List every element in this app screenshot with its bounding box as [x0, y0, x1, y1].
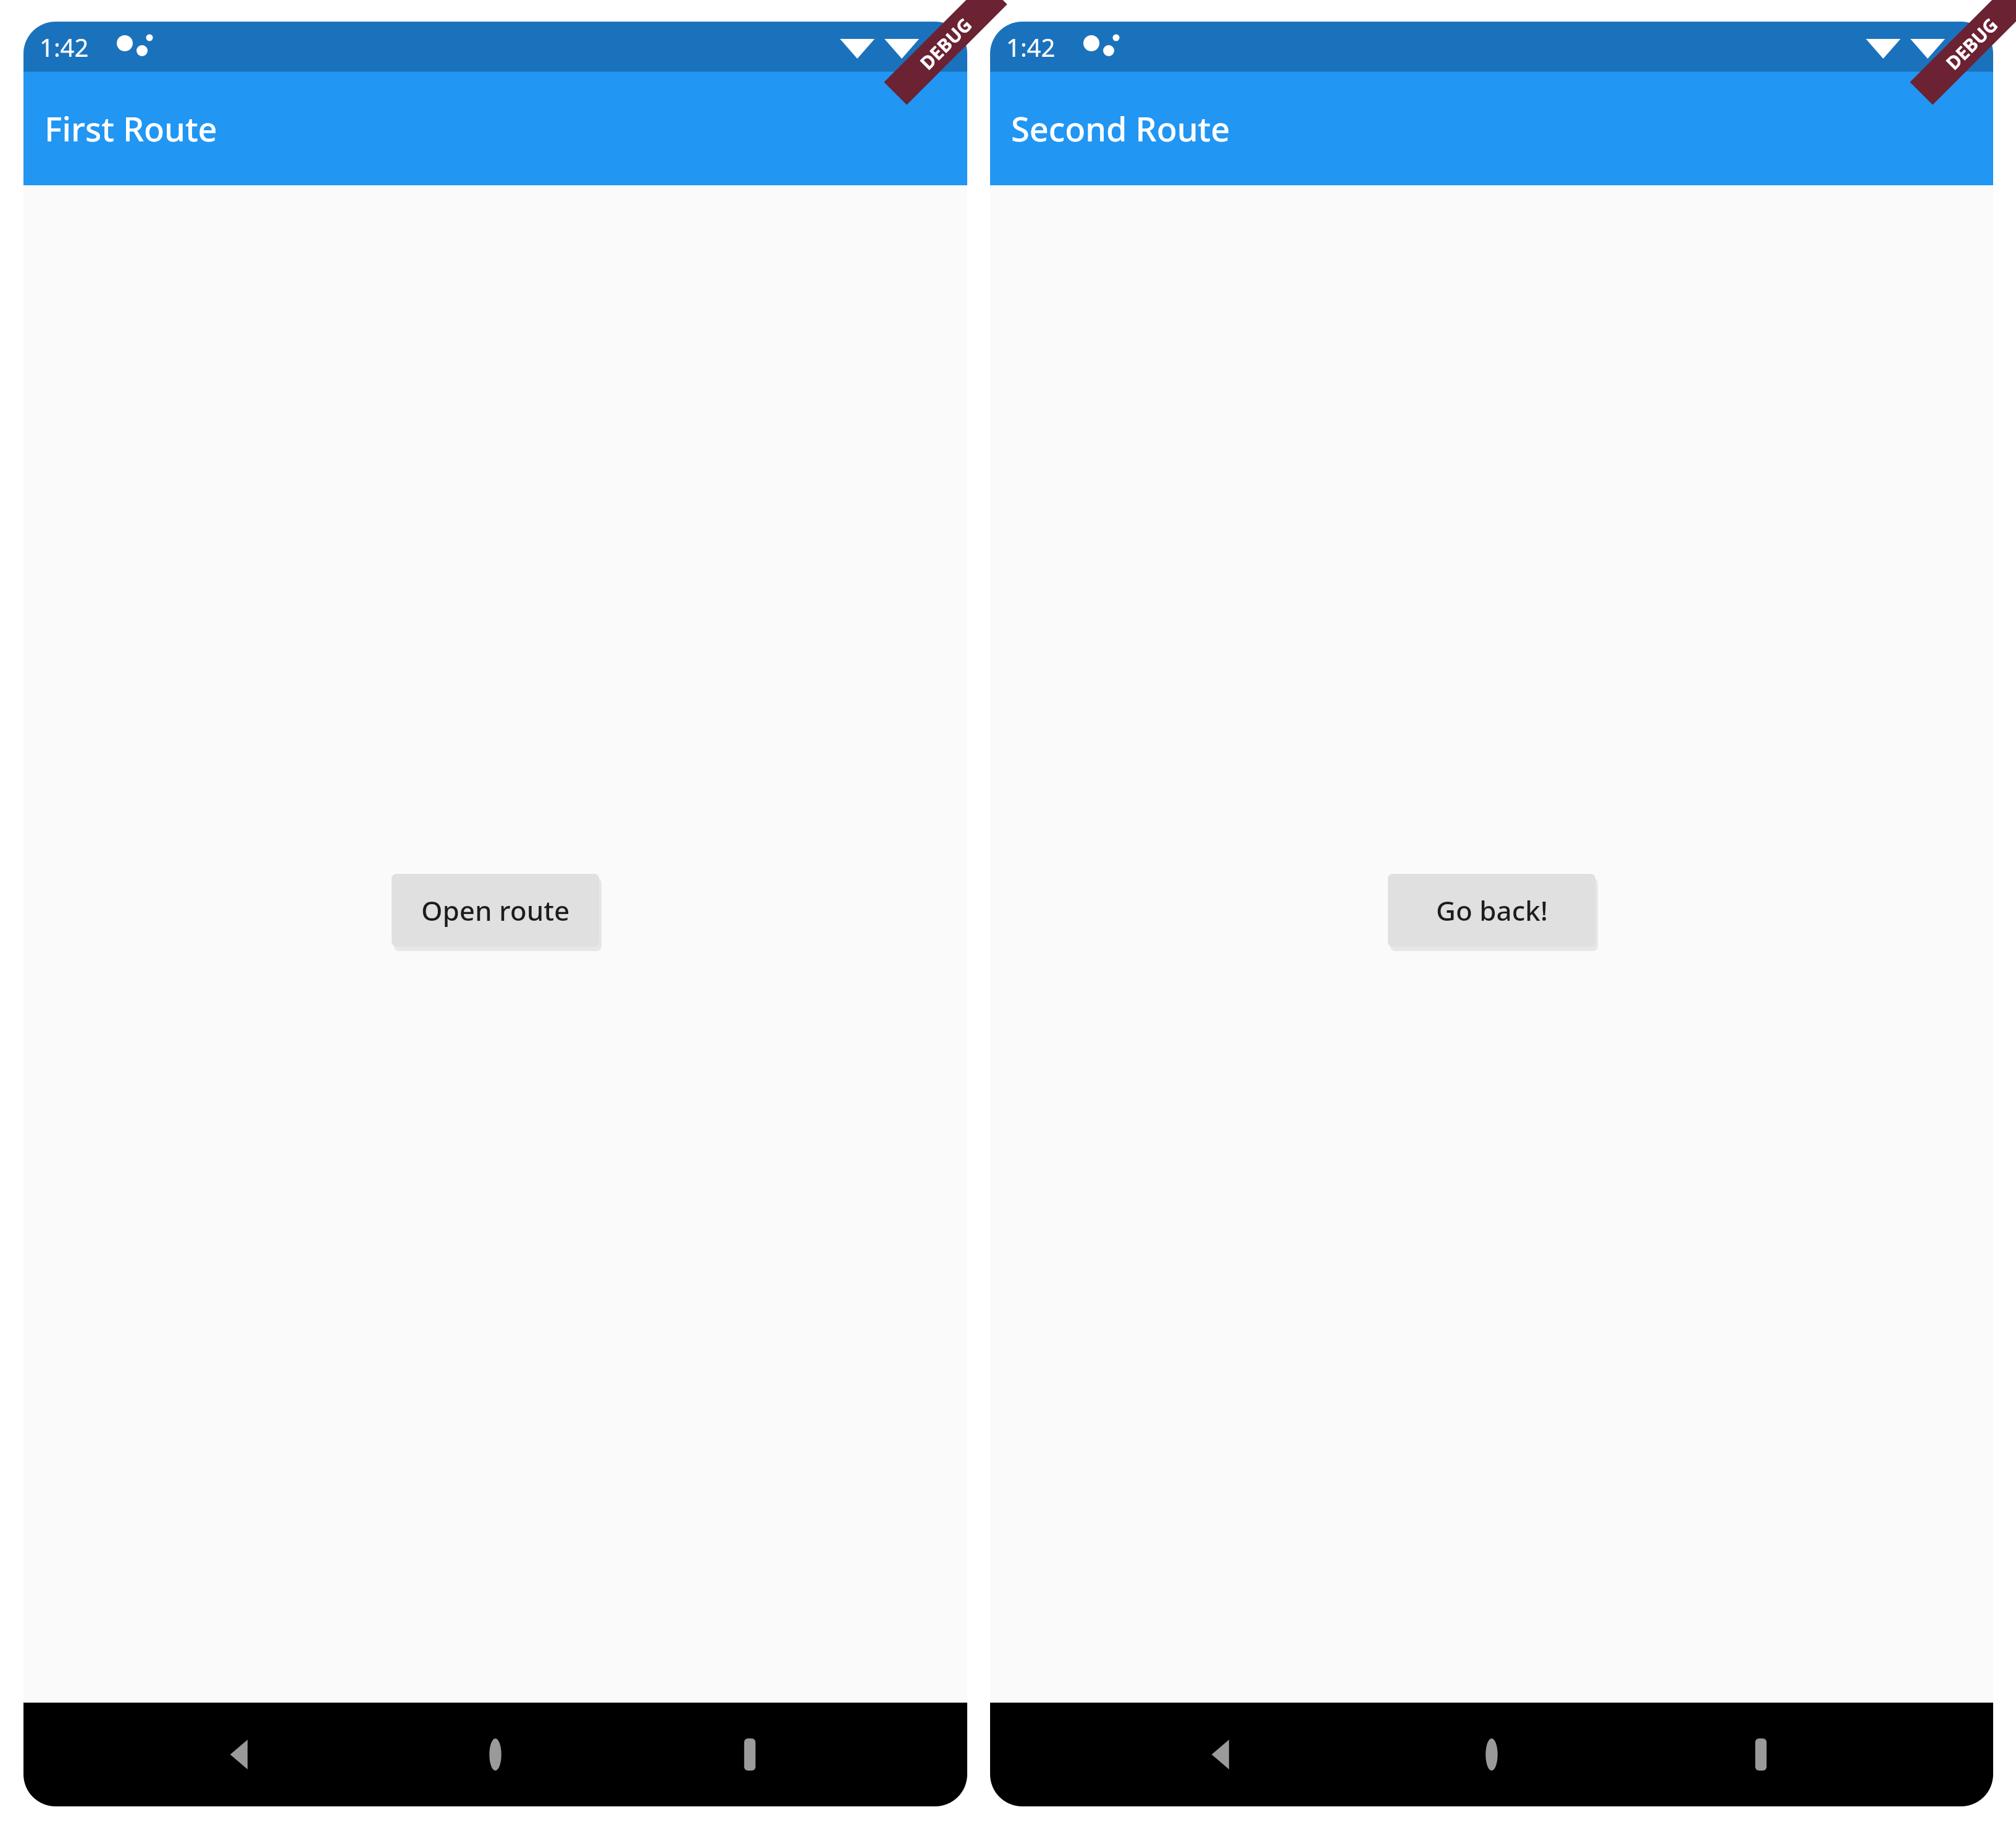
button[interactable]: Open route: [392, 874, 599, 947]
staticText: Second Route: [1011, 106, 1230, 151]
staticText: 1:42: [40, 30, 89, 64]
staticText: 1:42: [1006, 30, 1056, 64]
staticText: Open route: [421, 892, 570, 929]
button[interactable]: Go back!: [1388, 874, 1595, 947]
staticText: DEBUG: [1940, 12, 2003, 75]
button[interactable]: Home: [1455, 1717, 1529, 1792]
staticText: Go back!: [1436, 892, 1548, 929]
staticText: DEBUG: [914, 12, 977, 75]
button[interactable]: Recent apps: [1724, 1717, 1798, 1792]
button[interactable]: Back: [1185, 1717, 1259, 1792]
staticText: First Route: [44, 106, 217, 151]
button[interactable]: Back: [204, 1717, 278, 1792]
button[interactable]: Home: [458, 1717, 532, 1792]
button[interactable]: Recent apps: [713, 1717, 787, 1792]
